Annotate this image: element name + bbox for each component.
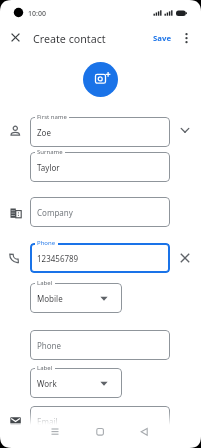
staticText: Zoe (37, 127, 51, 138)
button[interactable]: Email (30, 406, 170, 436)
button[interactable] (40, 422, 70, 442)
staticText: Company (37, 207, 73, 218)
staticText: Surname (37, 148, 63, 156)
button[interactable]: Mobile (30, 283, 122, 313)
staticText: Save (153, 33, 172, 44)
button[interactable]: Phone (30, 330, 170, 360)
staticText: Phone (37, 340, 62, 351)
button[interactable]: Work (30, 368, 122, 398)
button[interactable]: Save (149, 31, 175, 45)
staticText: Phone (37, 239, 56, 247)
staticText: Taylor (37, 162, 60, 173)
button[interactable]: Company (30, 197, 170, 227)
staticText: Label (37, 279, 53, 287)
staticText: Email (37, 416, 58, 427)
staticText: Work (37, 378, 57, 389)
staticText: First name (37, 113, 67, 121)
button[interactable]: Zoe (30, 117, 170, 147)
button[interactable] (8, 30, 23, 45)
button[interactable] (83, 62, 118, 97)
button[interactable] (85, 422, 115, 442)
button[interactable] (180, 30, 193, 46)
staticText: 10:00 (28, 9, 46, 19)
staticText: Label (37, 364, 53, 372)
button[interactable] (177, 122, 193, 138)
button[interactable]: 123456789 (30, 243, 170, 273)
staticText: Create contact (33, 32, 106, 47)
button[interactable]: Taylor (30, 152, 170, 182)
staticText: 123456789 (37, 253, 79, 264)
staticText: Mobile (37, 293, 63, 304)
button[interactable] (130, 422, 160, 442)
button[interactable] (177, 250, 193, 266)
